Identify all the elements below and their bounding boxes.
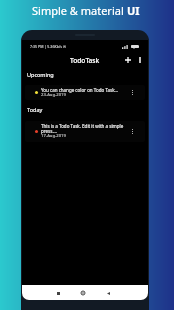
staticText: 23-Aug-2019 xyxy=(41,92,66,98)
button[interactable]: You can change color on Todo Task... xyxy=(25,85,145,100)
button[interactable]: Back xyxy=(103,288,113,298)
staticText: 7:35 PM | 5.36Kb/s ✉ xyxy=(30,44,66,49)
staticText: You can change color on Todo Task... xyxy=(41,87,119,93)
button[interactable]: Task options xyxy=(128,127,137,136)
staticText: 17-Aug-2019 xyxy=(41,133,66,139)
staticText: UI xyxy=(127,3,140,18)
button[interactable]: Home xyxy=(78,288,88,298)
button[interactable]: Task options xyxy=(128,88,137,97)
staticText: Simple & material xyxy=(32,3,127,18)
staticText: Upcoming xyxy=(27,71,54,78)
button[interactable]: Recents xyxy=(53,288,63,298)
staticText: This is a Todo Task. Edit it with a simp… xyxy=(41,123,124,134)
staticText: TodoTask xyxy=(70,56,100,65)
button[interactable]: Add task xyxy=(122,54,134,66)
staticText: Today xyxy=(27,106,43,113)
button[interactable]: More options xyxy=(134,54,146,66)
button[interactable]: This is a Todo Task. Edit it with a simp… xyxy=(25,121,145,142)
